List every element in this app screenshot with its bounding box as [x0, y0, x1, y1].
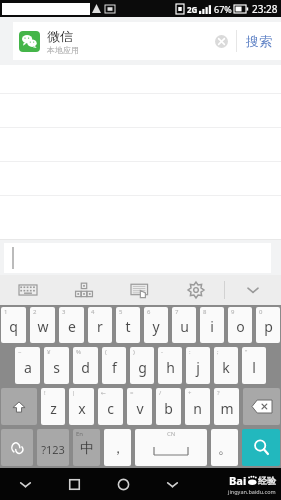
staticText: 搜索: [246, 33, 272, 49]
button[interactable]: 返回: [148, 468, 197, 500]
staticText: 0: [259, 308, 263, 316]
staticText: =: [130, 389, 134, 397]
staticText: 2G: [187, 4, 198, 15]
button[interactable]: 2: [30, 307, 55, 343]
button[interactable]: 4: [88, 307, 112, 343]
staticText: -: [161, 348, 163, 356]
button[interactable]: 手写: [112, 275, 168, 305]
button[interactable]: %: [73, 347, 98, 384]
staticText: ?: [217, 389, 220, 397]
staticText: y: [152, 317, 160, 336]
staticText: 67%: [214, 3, 232, 15]
staticText: /: [159, 389, 162, 397]
button[interactable]: ，: [104, 429, 131, 466]
button[interactable]: 表情: [1, 429, 33, 466]
button[interactable]: +: [185, 388, 210, 425]
staticText: 8: [203, 308, 207, 316]
button[interactable]: 收起: [0, 468, 50, 500]
button[interactable]: 主页: [99, 468, 148, 500]
button[interactable]: /: [156, 388, 181, 425]
button[interactable]: En: [73, 429, 100, 466]
button[interactable]: 搜索: [237, 22, 281, 60]
button[interactable]: ←: [98, 388, 123, 425]
button[interactable]: Shift: [1, 388, 37, 425]
staticText: e: [68, 317, 76, 336]
staticText: 经验: [258, 475, 276, 486]
button[interactable]: |: [69, 388, 94, 425]
button[interactable]: 设置: [168, 275, 224, 305]
staticText: j: [196, 358, 200, 377]
button[interactable]: 空格: [135, 429, 207, 466]
button[interactable]: [4, 243, 271, 273]
staticText: k: [222, 358, 230, 377]
staticText: +: [188, 389, 192, 397]
button[interactable]: 收起键盘: [225, 275, 281, 305]
button[interactable]: 3: [59, 307, 84, 343]
staticText: |: [72, 389, 76, 397]
staticText: 9: [231, 308, 235, 316]
staticText: ←: [101, 389, 107, 396]
staticText: m: [220, 399, 234, 418]
staticText: v: [136, 399, 144, 418]
staticText: ，: [111, 440, 125, 458]
staticText: p: [264, 317, 273, 336]
staticText: w: [37, 317, 49, 336]
button[interactable]: ;: [214, 347, 238, 384]
button[interactable]: 清除: [208, 28, 234, 54]
staticText: 2: [33, 308, 37, 316]
button[interactable]: 最近任务: [50, 468, 99, 500]
staticText: ~: [18, 348, 22, 356]
staticText: g: [138, 358, 147, 377]
staticText: 1: [4, 308, 8, 316]
button[interactable]: 布局: [56, 275, 112, 305]
staticText: u: [180, 317, 189, 336]
button[interactable]: 6: [144, 307, 168, 343]
staticText: 中: [80, 440, 94, 458]
staticText: a: [24, 358, 32, 377]
button[interactable]: ?: [214, 388, 239, 425]
button[interactable]: !: [41, 388, 65, 425]
button[interactable]: 7: [172, 307, 196, 343]
staticText: d: [81, 358, 90, 377]
staticText: c: [107, 399, 114, 418]
staticText: 微信: [47, 28, 73, 44]
button[interactable]: 8: [200, 307, 224, 343]
staticText: i: [210, 317, 214, 336]
button[interactable]: ?123: [37, 429, 69, 466]
staticText: ": [245, 348, 248, 356]
staticText: En: [76, 430, 84, 438]
staticText: ¥: [47, 348, 51, 356]
staticText: 3: [62, 308, 66, 316]
button[interactable]: 搜索: [242, 429, 280, 466]
button[interactable]: 0: [256, 307, 280, 343]
staticText: q: [9, 317, 18, 336]
button[interactable]: -: [158, 347, 182, 384]
staticText: f: [112, 358, 117, 377]
staticText: :: [189, 348, 191, 356]
button[interactable]: 键盘: [0, 275, 56, 305]
staticText: 23:28: [252, 2, 278, 16]
staticText: r: [97, 317, 103, 336]
staticText: b: [164, 399, 173, 418]
staticText: 6: [147, 308, 151, 316]
staticText: x: [78, 399, 86, 418]
button[interactable]: ): [130, 347, 154, 384]
button[interactable]: ": [242, 347, 266, 384]
staticText: 本地应用: [47, 45, 79, 55]
staticText: o: [236, 317, 245, 336]
button[interactable]: ¥: [44, 347, 69, 384]
button[interactable]: 5: [116, 307, 140, 343]
button[interactable]: 1: [1, 307, 26, 343]
button[interactable]: 。: [211, 429, 238, 466]
button[interactable]: :: [186, 347, 210, 384]
button[interactable]: ~: [15, 347, 40, 384]
staticText: %: [76, 348, 81, 356]
button[interactable]: =: [127, 388, 152, 425]
staticText: ?123: [41, 442, 65, 457]
staticText: !: [44, 389, 46, 397]
staticText: CN: [167, 430, 176, 438]
button[interactable]: (: [102, 347, 126, 384]
staticText: 。: [218, 440, 232, 458]
button[interactable]: 9: [228, 307, 252, 343]
button[interactable]: 删除: [243, 388, 280, 425]
